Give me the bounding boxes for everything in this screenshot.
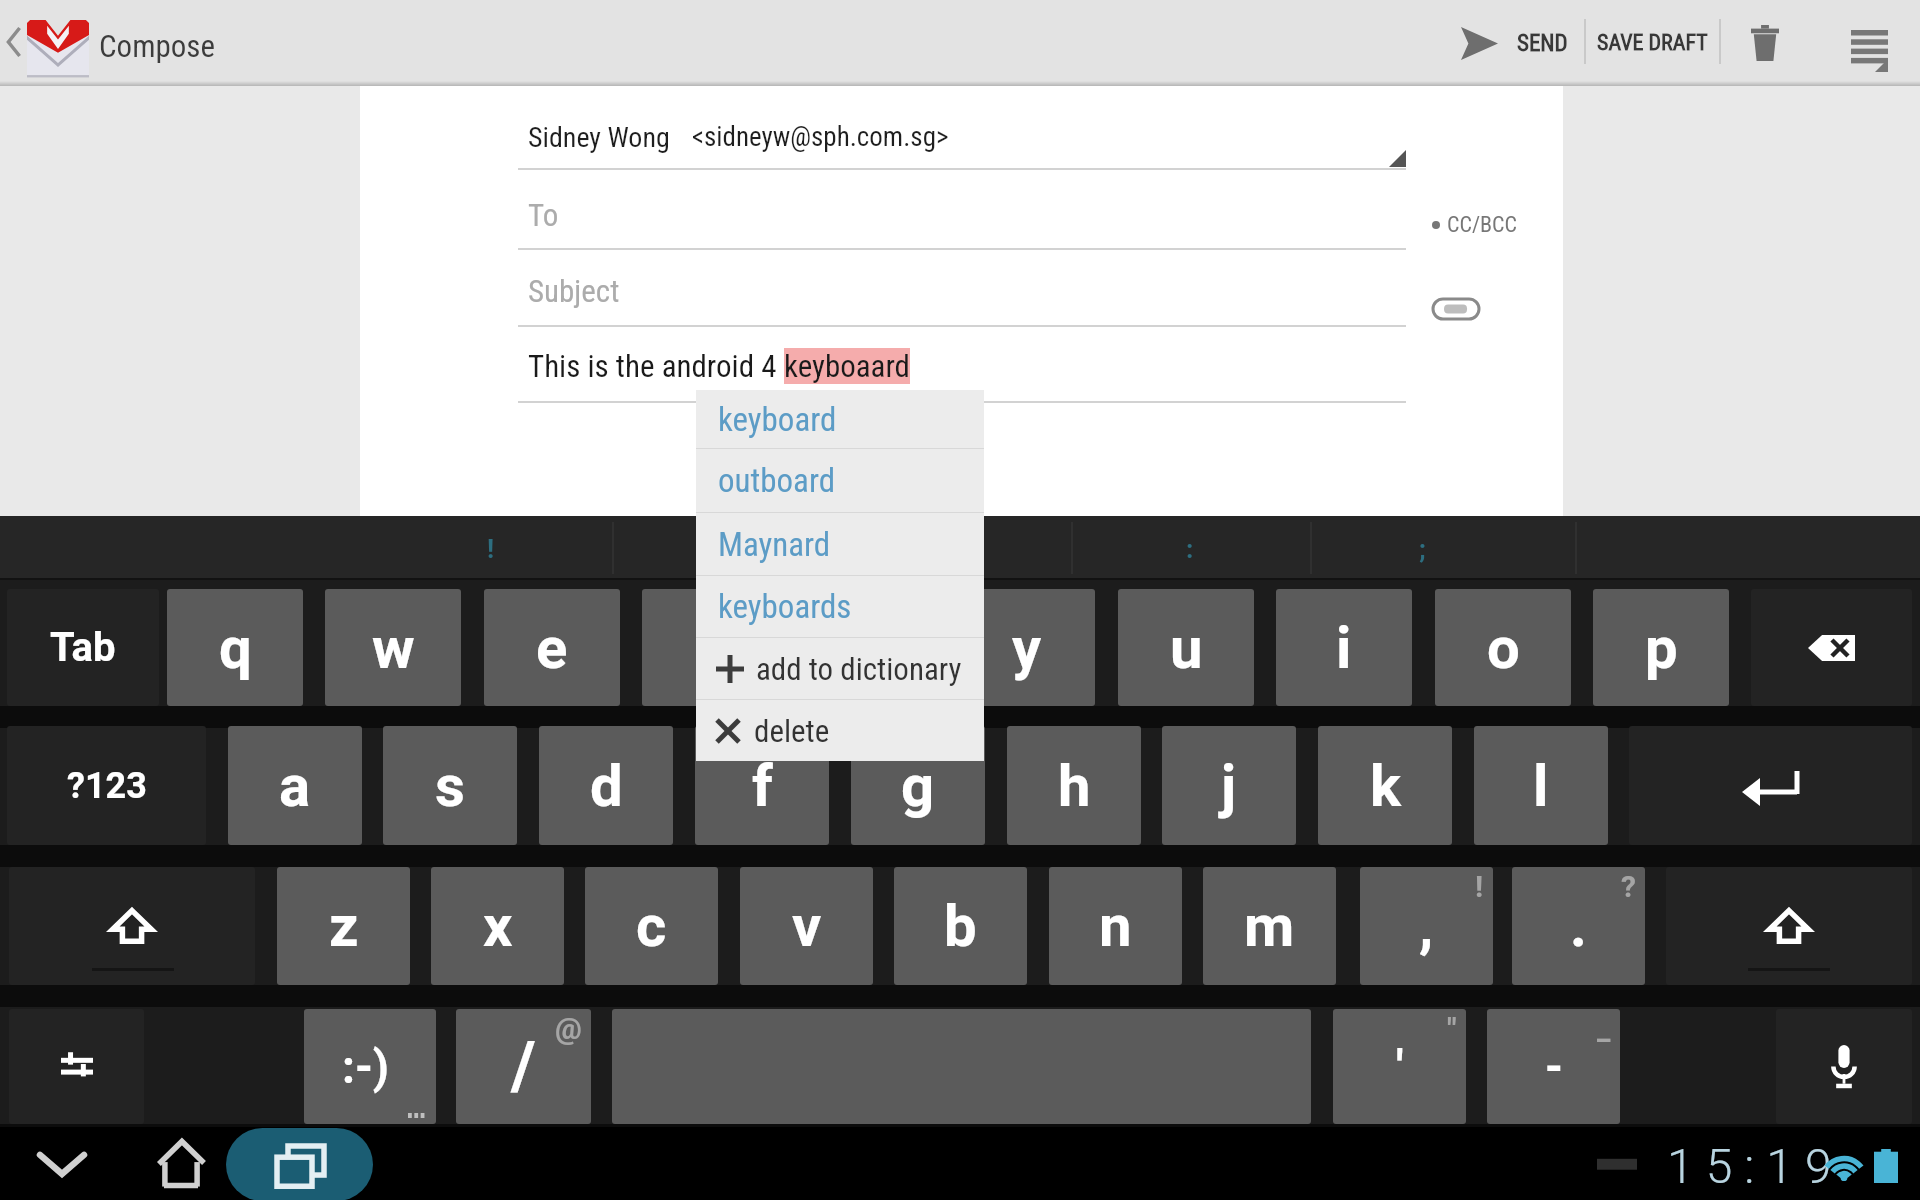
staticText: , [1419,892,1434,960]
button[interactable]: Shift [9,867,255,985]
button[interactable]: Emoticon [304,1009,436,1124]
staticText: - [1545,1040,1563,1094]
button[interactable]: - [1487,1009,1620,1124]
button[interactable]: Enter [1629,726,1912,845]
button[interactable]: o [1435,589,1571,706]
staticText: w [372,614,415,682]
button[interactable]: n [1049,867,1182,985]
button[interactable]: SEND [1511,0,1573,86]
button[interactable]: Attach file [1433,299,1479,319]
staticText: a [279,752,311,820]
staticText: To [528,197,559,233]
button[interactable]: d [539,726,673,845]
button[interactable]: outboard [696,449,984,512]
button[interactable]: t [801,589,937,706]
button[interactable]: Tab [7,589,159,706]
staticText: 15:19 [1667,1138,1844,1194]
button[interactable]: delete [696,700,984,761]
button[interactable]: s [383,726,517,845]
button[interactable]: a [228,726,362,845]
button[interactable]: y [959,589,1095,706]
button[interactable]: Discard [1735,0,1795,86]
button[interactable]: g [851,726,985,845]
staticText: keyboard [718,400,837,439]
staticText: y [1012,614,1042,682]
staticText: v [792,892,822,960]
other: Back [6,28,22,56]
button[interactable]: f [695,726,829,845]
staticText: keyboards [718,587,852,626]
button[interactable]: More options [1836,0,1902,86]
button[interactable]: add to dictionary [696,638,984,699]
staticText: SEND [1517,30,1568,57]
button[interactable]: ' [1333,1009,1466,1124]
button[interactable]: Recent apps [226,1127,373,1200]
staticText: @ [555,1011,582,1046]
staticText: " [1447,1011,1457,1046]
staticText: ; [1419,534,1426,564]
button[interactable]: Back [14,1127,110,1200]
staticText: u [1170,614,1203,682]
staticText: add to dictionary [756,651,962,687]
button[interactable]: keyboards [696,576,984,637]
button[interactable]: z [277,867,410,985]
button[interactable]: j [1162,726,1296,845]
staticText: n [1099,892,1132,960]
button[interactable]: k [1318,726,1452,845]
button[interactable]: Keyboard settings [9,1009,144,1124]
button[interactable]: u [1118,589,1254,706]
button[interactable]: . [1512,867,1645,985]
staticText: m [1244,892,1295,960]
button[interactable]: Shift [1666,867,1912,985]
button[interactable]: h [1007,726,1141,845]
button[interactable]: e [484,589,620,706]
staticText: : [1186,534,1194,564]
button[interactable]: m [1203,867,1336,985]
staticText: CC/BCC [1447,212,1518,238]
staticText: j [1221,752,1237,820]
button[interactable]: , [1360,867,1493,985]
staticText: t [859,614,879,682]
staticText: Subject [528,273,620,309]
button[interactable]: Backspace [1751,589,1912,706]
staticText: q [219,614,252,682]
staticText: SAVE DRAFT [1597,30,1708,56]
button[interactable]: keyboard [696,390,984,448]
button[interactable]: ?123 [7,726,206,845]
button[interactable]: r [642,589,778,706]
staticText: / [511,1028,536,1105]
staticText: :-) [342,1040,390,1094]
staticText: ' [1396,1040,1404,1094]
button[interactable]: l [1474,726,1608,845]
button[interactable]: Voice input [1776,1009,1912,1124]
staticText: delete [754,713,830,749]
button[interactable]: b [894,867,1027,985]
staticText: keyboaard [784,348,910,384]
button[interactable]: q [167,589,303,706]
staticText: s [435,752,465,820]
button[interactable]: SAVE DRAFT [1594,0,1710,86]
button[interactable]: Home [133,1127,229,1200]
staticText: ! [1475,869,1484,904]
staticText: Tab [50,624,116,671]
button[interactable]: v [740,867,873,985]
staticText: . [1570,892,1587,960]
staticText: x [483,892,513,960]
button[interactable]: p [1593,589,1729,706]
button[interactable]: c [585,867,718,985]
button[interactable]: i [1276,589,1412,706]
staticText: Sidney Wong [528,121,670,154]
button[interactable]: w [325,589,461,706]
staticText: p [1645,614,1678,682]
staticText: This is the android 4 [528,348,784,384]
button[interactable]: / [456,1009,591,1124]
button[interactable]: Maynard [696,513,984,575]
staticText: h [1058,752,1091,820]
staticText: <sidneyw@sph.com.sg> [692,121,949,153]
button[interactable]: x [431,867,564,985]
button[interactable]: Back [0,0,240,86]
button[interactable]: Send [1447,0,1511,86]
staticText: k [1370,752,1401,820]
button[interactable]: CC/BCC [1428,208,1522,242]
